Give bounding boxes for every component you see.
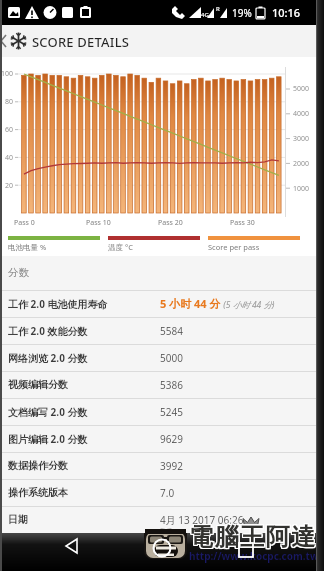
staticText: 電腦王阿達: [190, 523, 318, 553]
staticText: 日期: [8, 513, 160, 526]
staticText: 3992: [160, 459, 183, 473]
staticText: 20: [5, 181, 14, 191]
staticText: 19%: [232, 6, 252, 20]
button[interactable]: [52, 533, 92, 565]
staticText: 温度 °C: [108, 242, 133, 252]
staticText: Pass 0: [14, 218, 35, 228]
staticText: 電腦王阿達: [189, 522, 317, 552]
staticText: Score per pass: [208, 242, 260, 252]
staticText: 電腦王阿達: [188, 521, 316, 551]
button[interactable]: 工作 2.0 电池使用寿命: [0, 290, 324, 317]
staticText: 图片编辑 2.0 分数: [8, 432, 160, 446]
staticText: 電腦王阿達: [189, 521, 317, 551]
button[interactable]: 数据操作分数: [0, 452, 324, 479]
staticText: SCORE DETAILS: [32, 33, 130, 51]
button[interactable]: 日期: [0, 506, 324, 533]
staticText: 5000: [293, 84, 310, 94]
staticText: 7.0: [160, 486, 175, 500]
staticText: 分数: [8, 266, 29, 279]
staticText: 電腦王阿達: [190, 522, 318, 552]
staticText: 网络浏览 2.0 分数: [8, 351, 160, 365]
staticText: 5584: [160, 324, 183, 338]
button[interactable]: 工作 2.0 效能分数: [0, 317, 324, 344]
button[interactable]: 网络浏览 2.0 分数: [0, 344, 324, 371]
staticText: 2000: [293, 159, 310, 169]
button[interactable]: 图片编辑 2.0 分数: [0, 425, 324, 452]
staticText: R: [216, 5, 220, 13]
staticText: 工作 2.0 效能分数: [8, 324, 160, 338]
staticText: 工作 2.0 电池使用寿命: [8, 297, 160, 311]
staticText: 5 小时 44 分 (5 小时 44 分): [160, 296, 275, 311]
staticText: 视频编辑分数: [8, 378, 160, 391]
staticText: 電腦王阿達: [190, 521, 318, 551]
staticText: 電腦王阿達: [188, 522, 316, 552]
staticText: 100: [1, 69, 14, 79]
button[interactable]: [142, 533, 182, 565]
staticText: Pass 20: [158, 218, 183, 228]
staticText: 10:16: [272, 5, 301, 20]
button[interactable]: 文档编写 2.0 分数: [0, 398, 324, 425]
button[interactable]: 视频编辑分数: [0, 371, 324, 398]
staticText: 5386: [160, 378, 183, 392]
staticText: http://www.kocpc.com.tw: [189, 549, 319, 563]
staticText: 40: [5, 153, 14, 163]
staticText: 60: [5, 125, 14, 135]
staticText: 操作系统版本: [8, 486, 160, 499]
staticText: 电池电量 %: [8, 242, 47, 252]
staticText: 80: [5, 97, 14, 107]
staticText: 1000: [293, 184, 310, 194]
staticText: 3000: [293, 134, 310, 144]
staticText: Pass 30: [230, 218, 255, 228]
staticText: 5000: [160, 351, 183, 365]
staticText: 9629: [160, 432, 183, 446]
button[interactable]: [226, 533, 266, 565]
button[interactable]: 操作系统版本: [0, 479, 324, 506]
staticText: 電腦王阿達: [189, 523, 317, 553]
staticText: 電腦王阿達: [188, 523, 316, 553]
staticText: 4G: [201, 11, 209, 19]
staticText: 5245: [160, 405, 183, 419]
staticText: 4月 13 2017 06:26: [160, 513, 244, 527]
staticText: 文档编写 2.0 分数: [8, 405, 160, 419]
staticText: 4000: [293, 109, 310, 119]
button[interactable]: SCORE DETAILS: [0, 25, 324, 57]
staticText: Pass 10: [86, 218, 111, 228]
staticText: 数据操作分数: [8, 459, 160, 472]
